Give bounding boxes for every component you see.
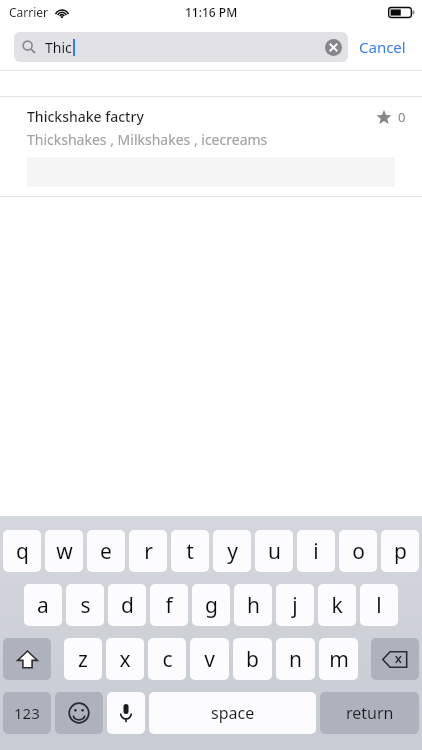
button[interactable]: f xyxy=(150,584,188,626)
button[interactable]: Emoji keyboard xyxy=(55,692,103,734)
staticText: r xyxy=(144,537,153,566)
staticText: f xyxy=(165,591,173,620)
button[interactable]: z xyxy=(64,638,102,680)
staticText: space xyxy=(211,702,255,724)
staticText: 0 xyxy=(398,108,406,126)
staticText: k xyxy=(331,591,343,620)
staticText: x xyxy=(119,645,131,674)
staticText: return xyxy=(346,702,394,724)
staticText: p xyxy=(394,537,407,566)
staticText: w xyxy=(56,537,73,566)
button[interactable]: p xyxy=(381,530,419,572)
staticText: g xyxy=(205,591,218,620)
button[interactable]: g xyxy=(192,584,230,626)
staticText: a xyxy=(37,591,49,620)
button[interactable]: r xyxy=(129,530,167,572)
staticText: Thickshake factry xyxy=(27,107,144,126)
staticText: Carrier xyxy=(9,4,49,20)
button[interactable]: u xyxy=(255,530,293,572)
button[interactable]: a xyxy=(24,584,62,626)
button[interactable]: Thickshake factry xyxy=(0,97,422,196)
button[interactable]: y xyxy=(213,530,251,572)
staticText: o xyxy=(352,537,365,566)
staticText: y xyxy=(227,537,238,566)
button[interactable]: t xyxy=(171,530,209,572)
button[interactable]: c xyxy=(148,638,186,680)
staticText: d xyxy=(121,591,134,620)
staticText: h xyxy=(247,591,260,620)
button[interactable]: d xyxy=(108,584,146,626)
button[interactable]: m xyxy=(319,638,358,680)
button[interactable]: e xyxy=(87,530,125,572)
staticText: Thic xyxy=(45,38,72,57)
button[interactable]: Delete xyxy=(371,638,419,680)
button[interactable]: s xyxy=(66,584,104,626)
button[interactable]: x xyxy=(106,638,144,680)
staticText: n xyxy=(289,645,302,674)
button[interactable]: Cancel xyxy=(348,32,408,62)
staticText: q xyxy=(16,537,29,566)
staticText: i xyxy=(313,537,319,566)
button[interactable]: j xyxy=(276,584,314,626)
button[interactable]: Thic xyxy=(14,32,348,62)
staticText: s xyxy=(80,591,91,620)
staticText: Thickshakes , Milkshakes , icecreams xyxy=(27,130,268,149)
button[interactable]: i xyxy=(297,530,335,572)
staticText: v xyxy=(204,645,215,674)
button[interactable]: h xyxy=(234,584,272,626)
staticText: u xyxy=(268,537,281,566)
staticText: l xyxy=(376,591,382,620)
button[interactable]: k xyxy=(318,584,356,626)
button[interactable]: v xyxy=(190,638,229,680)
staticText: m xyxy=(329,645,349,674)
button[interactable]: w xyxy=(45,530,83,572)
staticText: t xyxy=(186,537,194,566)
staticText: 123 xyxy=(14,703,40,723)
staticText: j xyxy=(292,591,298,620)
button[interactable]: b xyxy=(233,638,272,680)
button[interactable]: Dictation xyxy=(107,692,145,734)
staticText: z xyxy=(78,645,88,674)
button[interactable]: l xyxy=(360,584,398,626)
staticText: Cancel xyxy=(359,37,406,57)
staticText: c xyxy=(162,645,173,674)
button[interactable]: 123 xyxy=(3,692,51,734)
button[interactable]: space xyxy=(149,692,316,734)
staticText: b xyxy=(246,645,259,674)
button[interactable]: return xyxy=(320,692,419,734)
staticText: e xyxy=(100,537,112,566)
button[interactable]: o xyxy=(339,530,377,572)
button[interactable]: q xyxy=(3,530,41,572)
staticText: 11:16 PM xyxy=(185,4,238,20)
button[interactable]: Shift xyxy=(3,638,51,680)
button[interactable]: n xyxy=(276,638,315,680)
button[interactable]: Clear text xyxy=(325,39,342,56)
